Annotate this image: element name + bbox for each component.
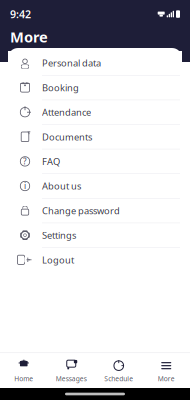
button[interactable]: Documents xyxy=(8,124,182,149)
staticText: ? xyxy=(23,156,27,167)
button[interactable]: More xyxy=(142,360,190,383)
button[interactable]: Attendance xyxy=(8,100,182,124)
button[interactable]: ? xyxy=(8,149,182,173)
button[interactable]: Logout xyxy=(8,247,182,272)
button[interactable]: Messages xyxy=(47,360,95,383)
staticText: Personal data xyxy=(42,57,101,69)
staticText: Attendance xyxy=(42,106,91,118)
staticText: Home xyxy=(14,374,33,383)
staticText: Documents xyxy=(42,131,92,143)
staticText: More xyxy=(10,27,48,47)
button[interactable]: Schedule xyxy=(95,360,142,383)
button[interactable]: i xyxy=(8,173,182,198)
staticText: i xyxy=(24,181,26,191)
staticText: About us xyxy=(42,180,81,192)
button[interactable]: Change password xyxy=(8,198,182,223)
button[interactable]: Booking xyxy=(8,75,182,100)
button[interactable]: Settings xyxy=(8,223,182,247)
staticText: Logout xyxy=(42,254,74,266)
staticText: FAQ xyxy=(42,155,60,168)
staticText: Change password xyxy=(42,204,120,217)
staticText: Settings xyxy=(42,229,76,241)
button[interactable]: Personal data xyxy=(8,51,182,75)
staticText: 9:42 xyxy=(10,7,31,21)
staticText: More xyxy=(158,374,175,383)
staticText: Schedule xyxy=(104,374,133,383)
staticText: Booking xyxy=(42,81,79,94)
staticText: Messages xyxy=(56,374,87,383)
button[interactable]: Home xyxy=(0,360,47,383)
